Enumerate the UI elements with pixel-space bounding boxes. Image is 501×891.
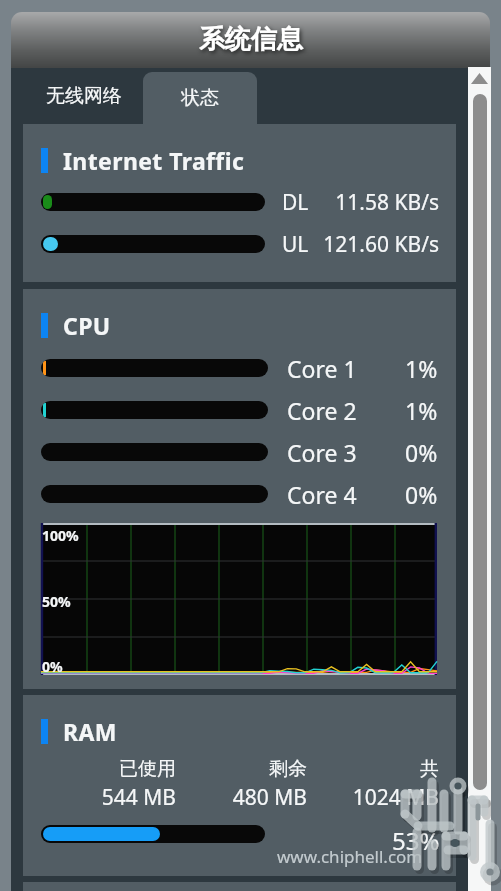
staticText: 1% <box>405 353 438 384</box>
button[interactable]: 无线网络 <box>23 68 145 124</box>
staticText: 100% <box>42 526 79 545</box>
button[interactable]: 系统信息 <box>11 12 490 68</box>
staticText: 0% <box>42 657 63 676</box>
staticText: 544 MB <box>101 783 176 807</box>
staticText: RAM <box>63 716 117 746</box>
button[interactable]: 状态 <box>143 72 257 124</box>
staticText: 0% <box>405 437 438 468</box>
button[interactable]: Scroll <box>468 67 491 891</box>
staticText: 1024 MB <box>352 783 439 807</box>
staticText: 1% <box>405 395 438 426</box>
staticText: Internet Traffic <box>63 145 245 175</box>
staticText: 共 <box>420 757 439 781</box>
staticText: www.chiphell.com <box>277 845 423 868</box>
staticText: 已使用 <box>119 757 176 781</box>
staticText: Core 1 <box>287 353 357 384</box>
staticText: 480 MB <box>232 783 307 807</box>
staticText: Core 3 <box>287 437 357 468</box>
staticText: 0% <box>405 479 438 510</box>
staticText: UL <box>282 230 309 259</box>
staticText: 无线网络 <box>46 84 122 108</box>
staticText: 53% <box>392 824 440 857</box>
staticText: 121.60 KB/s <box>323 230 439 259</box>
staticText: CPU <box>63 310 111 340</box>
staticText: Core 4 <box>287 479 357 510</box>
staticText: DL <box>282 188 309 217</box>
staticText: Core 2 <box>287 395 357 426</box>
staticText: 11.58 KB/s <box>335 188 439 217</box>
staticText: 50% <box>42 592 71 611</box>
staticText: 状态 <box>181 86 219 110</box>
staticText: 系统信息 <box>199 23 303 56</box>
staticText: 剩余 <box>269 757 307 781</box>
